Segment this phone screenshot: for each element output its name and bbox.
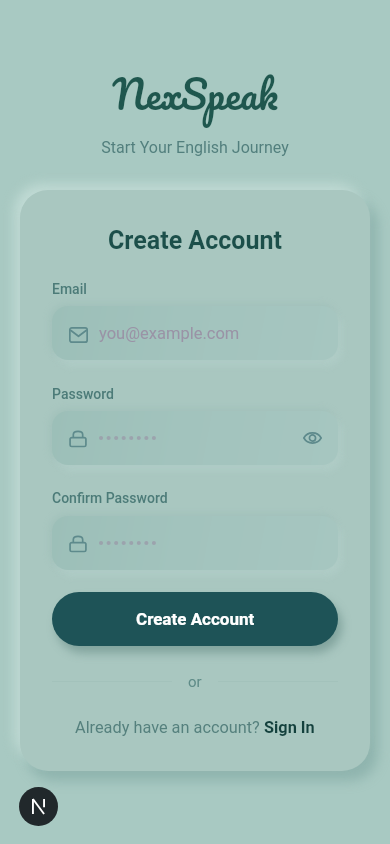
staticText: you@example.com [99,324,240,343]
button[interactable]: Show password [294,411,330,465]
staticText: Confirm Password [52,490,168,506]
staticText: Email [52,281,87,297]
button[interactable]: Next.js dev tools [19,787,58,826]
staticText: or [188,673,202,691]
button[interactable] [52,516,338,570]
button[interactable]: Create Account [52,592,338,646]
button[interactable]: Sign In [264,718,315,737]
staticText: Start Your English Journey [101,138,289,157]
staticText: Create Account [136,609,255,629]
staticText: Sign In [264,718,315,737]
staticText: Password [52,386,115,402]
staticText: NexSpeak [112,60,278,127]
button[interactable]: Show password [52,411,338,465]
staticText: Already have an account? [75,718,264,737]
button[interactable]: you@example.com [52,306,338,360]
staticText: Create Account [108,226,282,255]
